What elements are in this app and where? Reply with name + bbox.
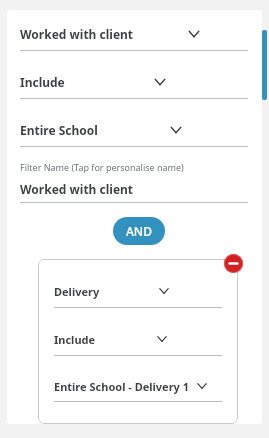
- button[interactable]: Delivery: [54, 278, 222, 308]
- button[interactable]: Entire School: [20, 117, 248, 147]
- button[interactable]: Include: [54, 326, 222, 356]
- button[interactable]: Worked with client: [20, 21, 248, 51]
- staticText: Delivery: [54, 284, 100, 299]
- staticText: Entire School - Delivery 1: [54, 379, 190, 394]
- button[interactable]: Include: [20, 69, 248, 99]
- staticText: AND: [126, 223, 152, 239]
- staticText: Include: [20, 74, 65, 90]
- button[interactable]: Entire School - Delivery 1: [54, 374, 222, 402]
- button[interactable]: AND: [113, 217, 165, 245]
- staticText: Entire School: [20, 122, 98, 138]
- button[interactable]: Worked with client: [20, 181, 248, 203]
- button[interactable]: Remove filter group: [224, 254, 243, 273]
- staticText: Worked with client: [20, 181, 134, 197]
- staticText: Filter Name (Tap for personalise name): [20, 161, 184, 173]
- staticText: Worked with client: [20, 26, 134, 42]
- staticText: Include: [54, 332, 96, 347]
